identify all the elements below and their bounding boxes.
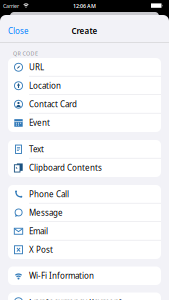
button[interactable]: Location bbox=[8, 76, 161, 95]
staticText: Carrier bbox=[3, 2, 19, 10]
button[interactable]: Cryptocurrency Payment bbox=[8, 292, 161, 300]
staticText: Create bbox=[71, 25, 97, 36]
button[interactable]: URL bbox=[8, 58, 161, 76]
staticText: Wi-Fi Information bbox=[29, 270, 94, 281]
staticText: Close bbox=[8, 25, 29, 36]
staticText: URL bbox=[29, 62, 44, 72]
button[interactable]: Text bbox=[8, 140, 161, 158]
button[interactable]: Contact Card bbox=[8, 95, 161, 113]
staticText: 12:06 AM bbox=[73, 2, 96, 10]
staticText: Cryptocurrency Payment bbox=[29, 296, 122, 300]
staticText: Contact Card bbox=[29, 99, 77, 109]
button[interactable]: Close bbox=[8, 25, 29, 36]
button[interactable]: Phone Call bbox=[8, 185, 161, 203]
staticText: Phone Call bbox=[29, 189, 69, 199]
staticText: Text bbox=[29, 144, 44, 154]
staticText: Message bbox=[29, 207, 63, 218]
staticText: QR CODE bbox=[13, 50, 38, 57]
button[interactable]: X Post bbox=[8, 240, 161, 259]
staticText: X Post bbox=[29, 244, 53, 255]
button[interactable]: Message bbox=[8, 203, 161, 222]
button[interactable]: Email bbox=[8, 222, 161, 240]
staticText: Location bbox=[29, 80, 61, 91]
button[interactable]: Wi-Fi Information bbox=[8, 266, 161, 285]
staticText: Event bbox=[29, 117, 50, 128]
staticText: Email bbox=[29, 226, 48, 236]
staticText: Clipboard Contents bbox=[29, 162, 102, 173]
button[interactable]: Clipboard Contents bbox=[8, 158, 161, 177]
button[interactable]: Event bbox=[8, 113, 161, 132]
